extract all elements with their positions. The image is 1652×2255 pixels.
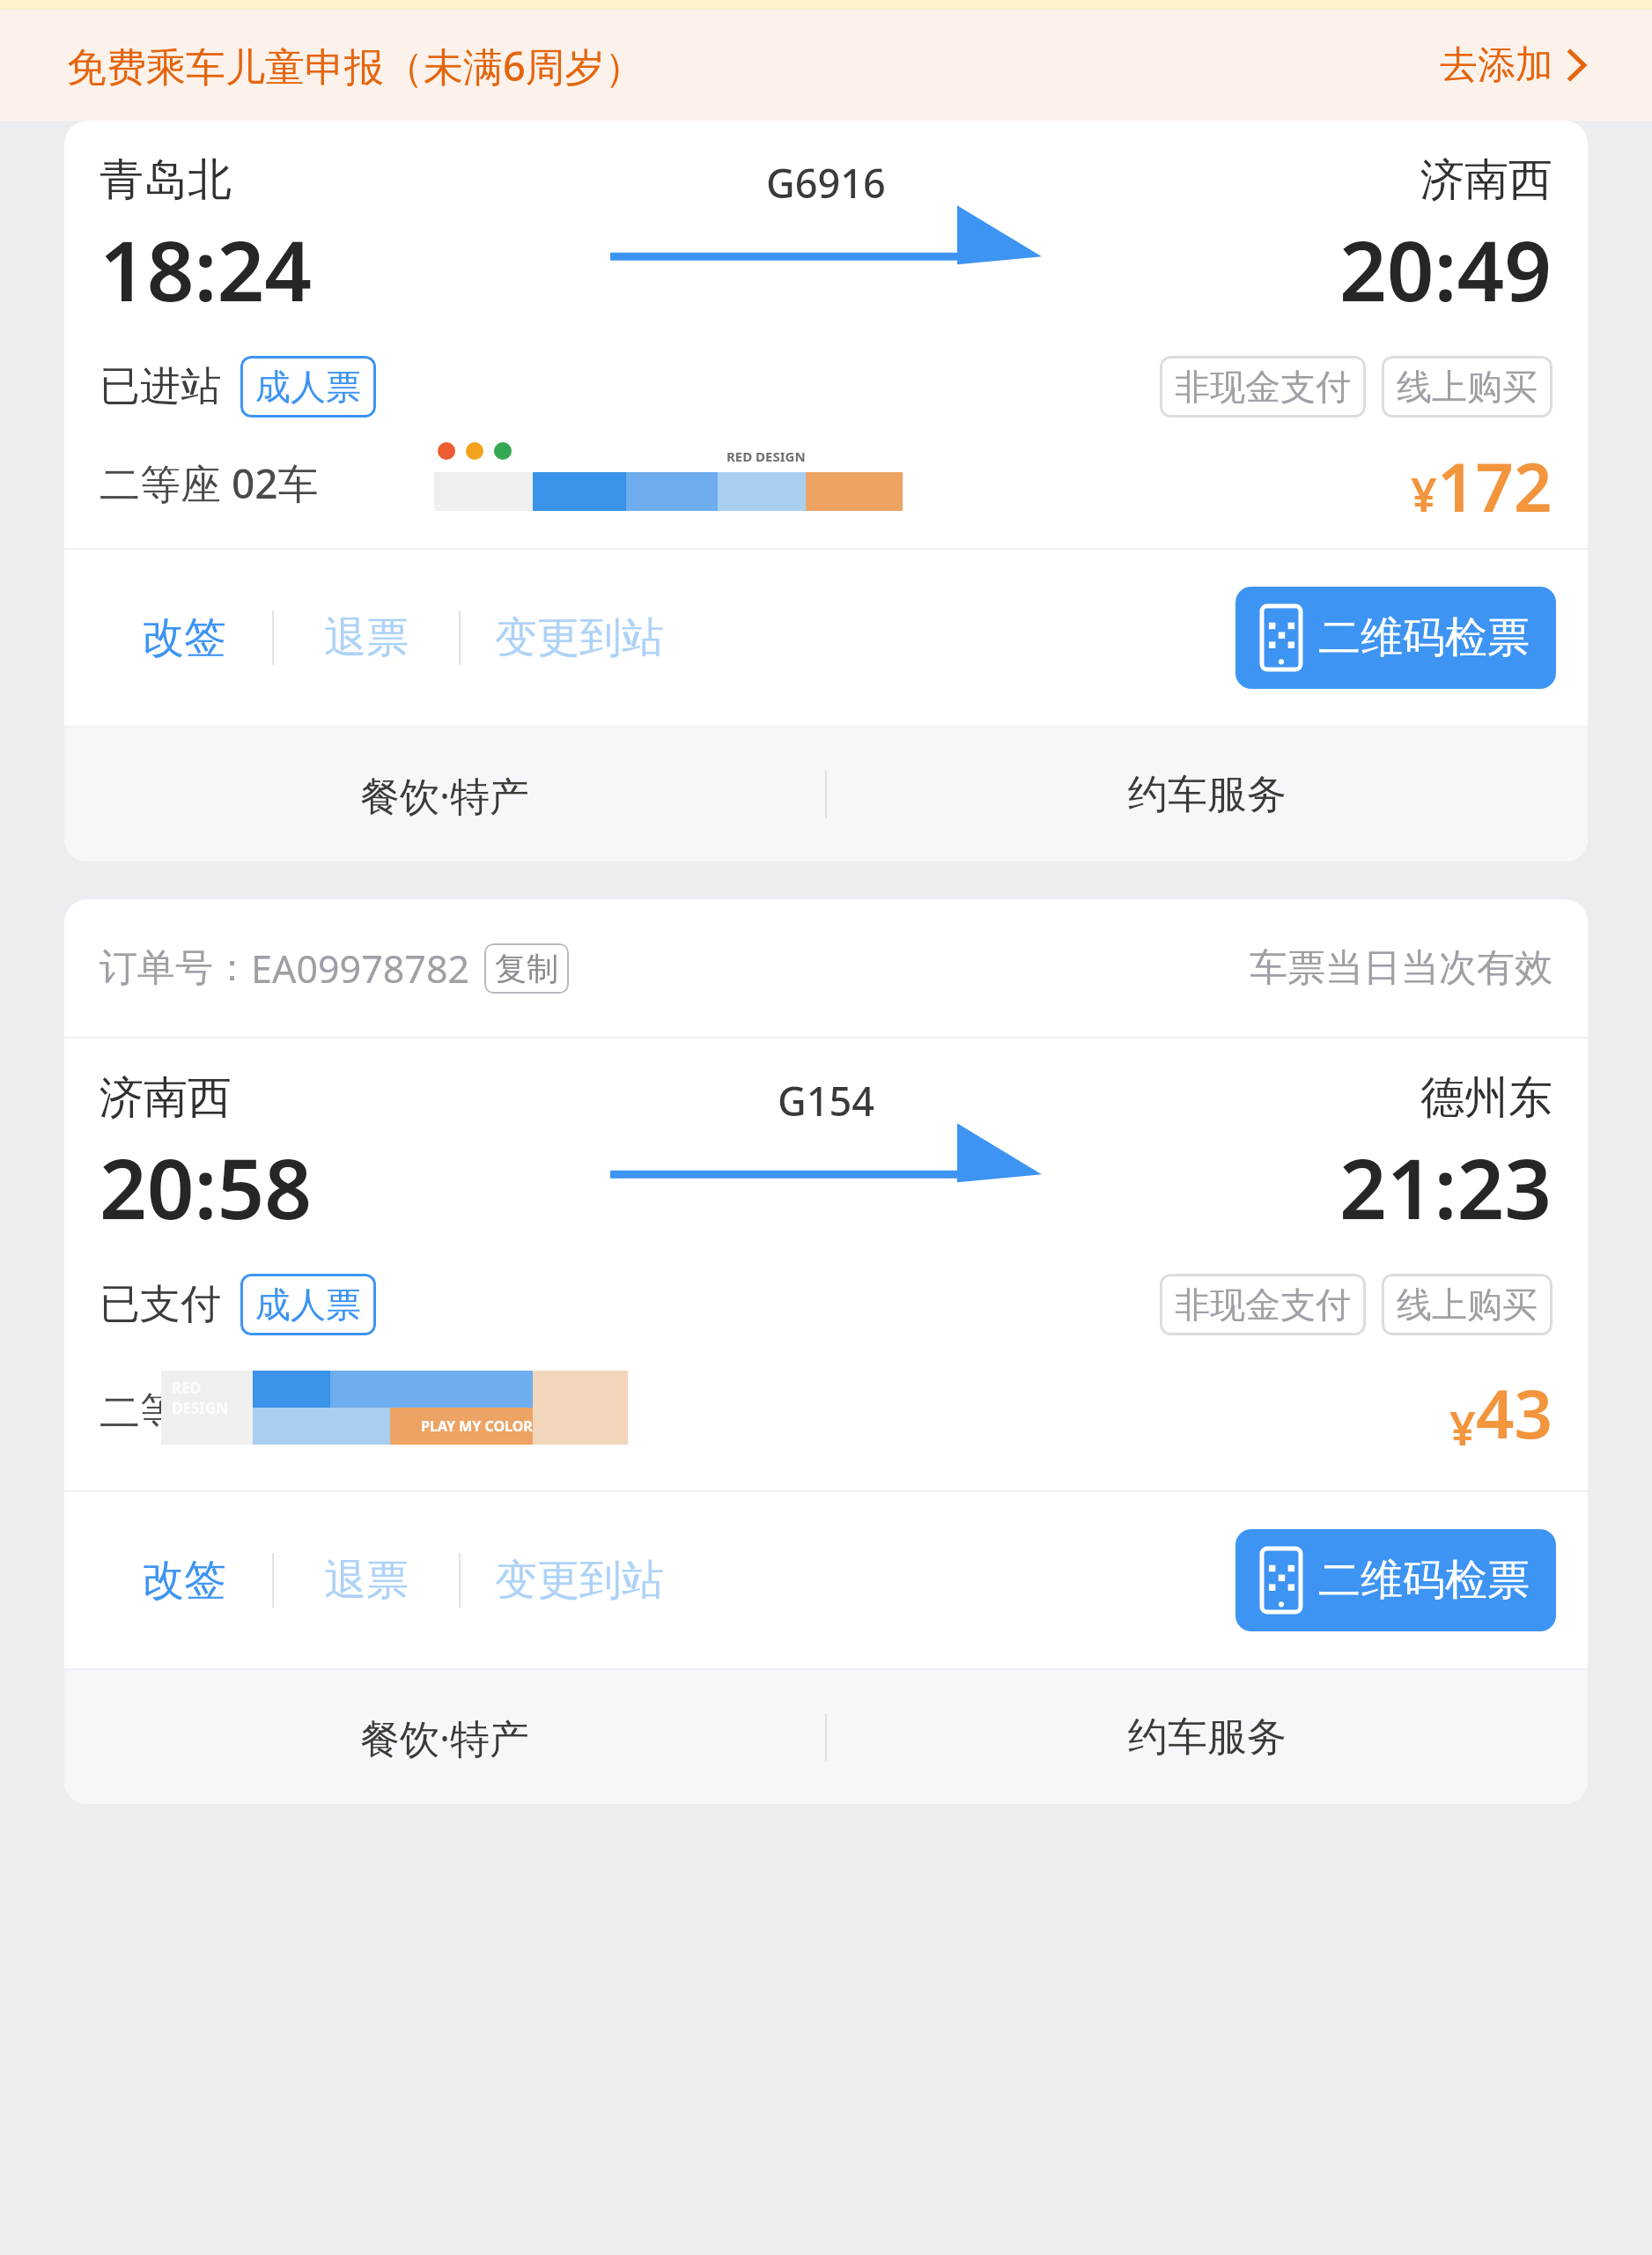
button[interactable]: 成人票 <box>240 356 376 418</box>
staticText: EA09978782 <box>251 943 470 994</box>
staticText: 已进站 <box>100 361 221 412</box>
button[interactable]: 免费乘车儿童申报（未满6周岁） <box>0 10 1652 121</box>
staticText: 订单号： <box>100 944 251 992</box>
button[interactable]: 非现金支付 <box>1160 356 1366 418</box>
staticText: 非现金支付 <box>1175 365 1351 409</box>
staticText: PLAY MY COLOR <box>421 1416 533 1436</box>
staticText: 改签 <box>142 611 226 664</box>
staticText: 20:58 <box>100 1131 313 1244</box>
button[interactable]: 二维码检票 <box>1235 587 1556 689</box>
button[interactable]: 餐饮·特产 <box>64 1670 825 1804</box>
staticText: 21:23 <box>1339 1131 1552 1244</box>
button[interactable]: 线上购买 <box>1382 356 1552 418</box>
staticText: 43 <box>1476 1367 1552 1459</box>
staticText: 线上购买 <box>1397 1283 1538 1327</box>
staticText: ¥ <box>1411 462 1437 525</box>
staticText: 约车服务 <box>1128 770 1287 820</box>
button[interactable]: 线上购买 <box>1382 1274 1552 1335</box>
staticText: 二维码检票 <box>1318 1554 1530 1607</box>
button[interactable]: 约车服务 <box>827 1670 1588 1804</box>
button[interactable]: 复制 <box>484 943 569 994</box>
staticText: 济南西 <box>1420 152 1552 208</box>
button[interactable]: 改签 <box>96 550 272 726</box>
staticText: 餐饮·特产 <box>360 1711 530 1764</box>
staticText: 二等座 <box>100 1387 221 1438</box>
staticText: 济南西 <box>100 1070 232 1126</box>
staticText: 改签 <box>142 1554 226 1607</box>
staticText: 去添加 <box>1440 41 1553 89</box>
staticText: 约车服务 <box>1128 1712 1287 1763</box>
button[interactable]: 变更到站 <box>461 1492 698 1668</box>
other: 二维码检票 <box>1262 1549 1301 1612</box>
button[interactable]: 成人票 <box>240 1274 376 1335</box>
button[interactable]: 约车服务 <box>827 728 1588 861</box>
staticText: 德州东 <box>1420 1070 1552 1126</box>
button[interactable]: 变更到站 <box>461 550 698 726</box>
staticText: 172 <box>1437 440 1552 525</box>
staticText: ¥ <box>1449 1396 1476 1459</box>
staticText: 免费乘车儿童申报（未满6周岁） <box>67 39 645 92</box>
button[interactable]: 改签 <box>96 1492 272 1668</box>
button[interactable]: 二维码检票 <box>1235 1529 1556 1631</box>
staticText: 二维码检票 <box>1318 611 1530 664</box>
staticText: 退票 <box>324 611 409 664</box>
staticText: 成人票 <box>255 365 361 409</box>
button[interactable]: 非现金支付 <box>1160 1274 1366 1335</box>
staticText: 已支付 <box>100 1279 221 1330</box>
button[interactable]: 退票 <box>274 1492 459 1668</box>
staticText: 退票 <box>324 1554 409 1607</box>
staticText: 二等座 02车 <box>100 455 329 511</box>
other: 二维码检票 <box>1262 606 1301 669</box>
staticText: G154 <box>778 1074 874 1127</box>
staticText: RED DESIGN <box>726 447 806 465</box>
staticText: 变更到站 <box>495 1554 664 1607</box>
staticText: 复制 <box>495 949 558 988</box>
staticText: RED DESIGN <box>172 1378 229 1418</box>
staticText: 成人票 <box>255 1283 361 1327</box>
staticText: 线上购买 <box>1397 365 1538 409</box>
staticText: 餐饮·特产 <box>360 768 530 822</box>
staticText: 车票当日当次有效 <box>1250 944 1552 992</box>
staticText: 变更到站 <box>495 611 664 664</box>
button[interactable]: 退票 <box>274 550 459 726</box>
staticText: G6916 <box>766 156 886 210</box>
staticText: 非现金支付 <box>1175 1283 1351 1327</box>
staticText: 20:49 <box>1339 213 1552 326</box>
staticText: 青岛北 <box>100 152 232 208</box>
staticText: 18:24 <box>100 213 313 326</box>
button[interactable]: 餐饮·特产 <box>64 728 825 861</box>
